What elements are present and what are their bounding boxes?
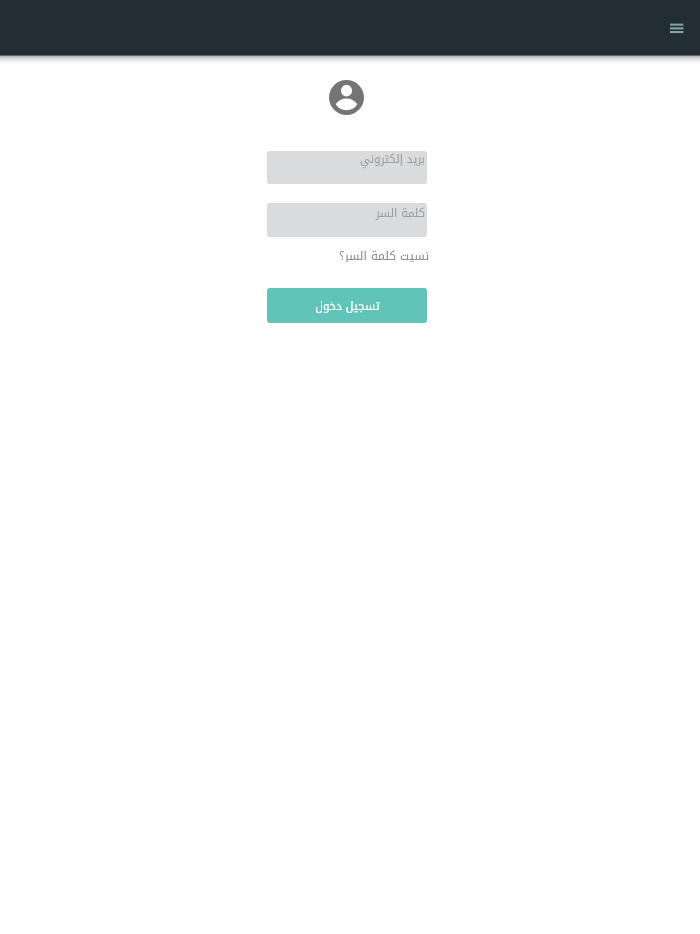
- staticText: نسيت كلمة السر؟: [339, 245, 429, 262]
- staticText: كلمة السر: [376, 203, 426, 224]
- staticText: تسجيل دخول: [315, 295, 380, 317]
- button[interactable]: تسجيل دخول: [267, 288, 427, 323]
- button[interactable]: نسيت كلمة السر؟: [267, 245, 427, 262]
- button[interactable]: كلمة السر: [267, 203, 427, 237]
- button[interactable]: Menu: [662, 13, 692, 43]
- button[interactable]: بريد إلكتروني: [267, 151, 427, 184]
- staticText: بريد إلكتروني: [360, 151, 425, 170]
